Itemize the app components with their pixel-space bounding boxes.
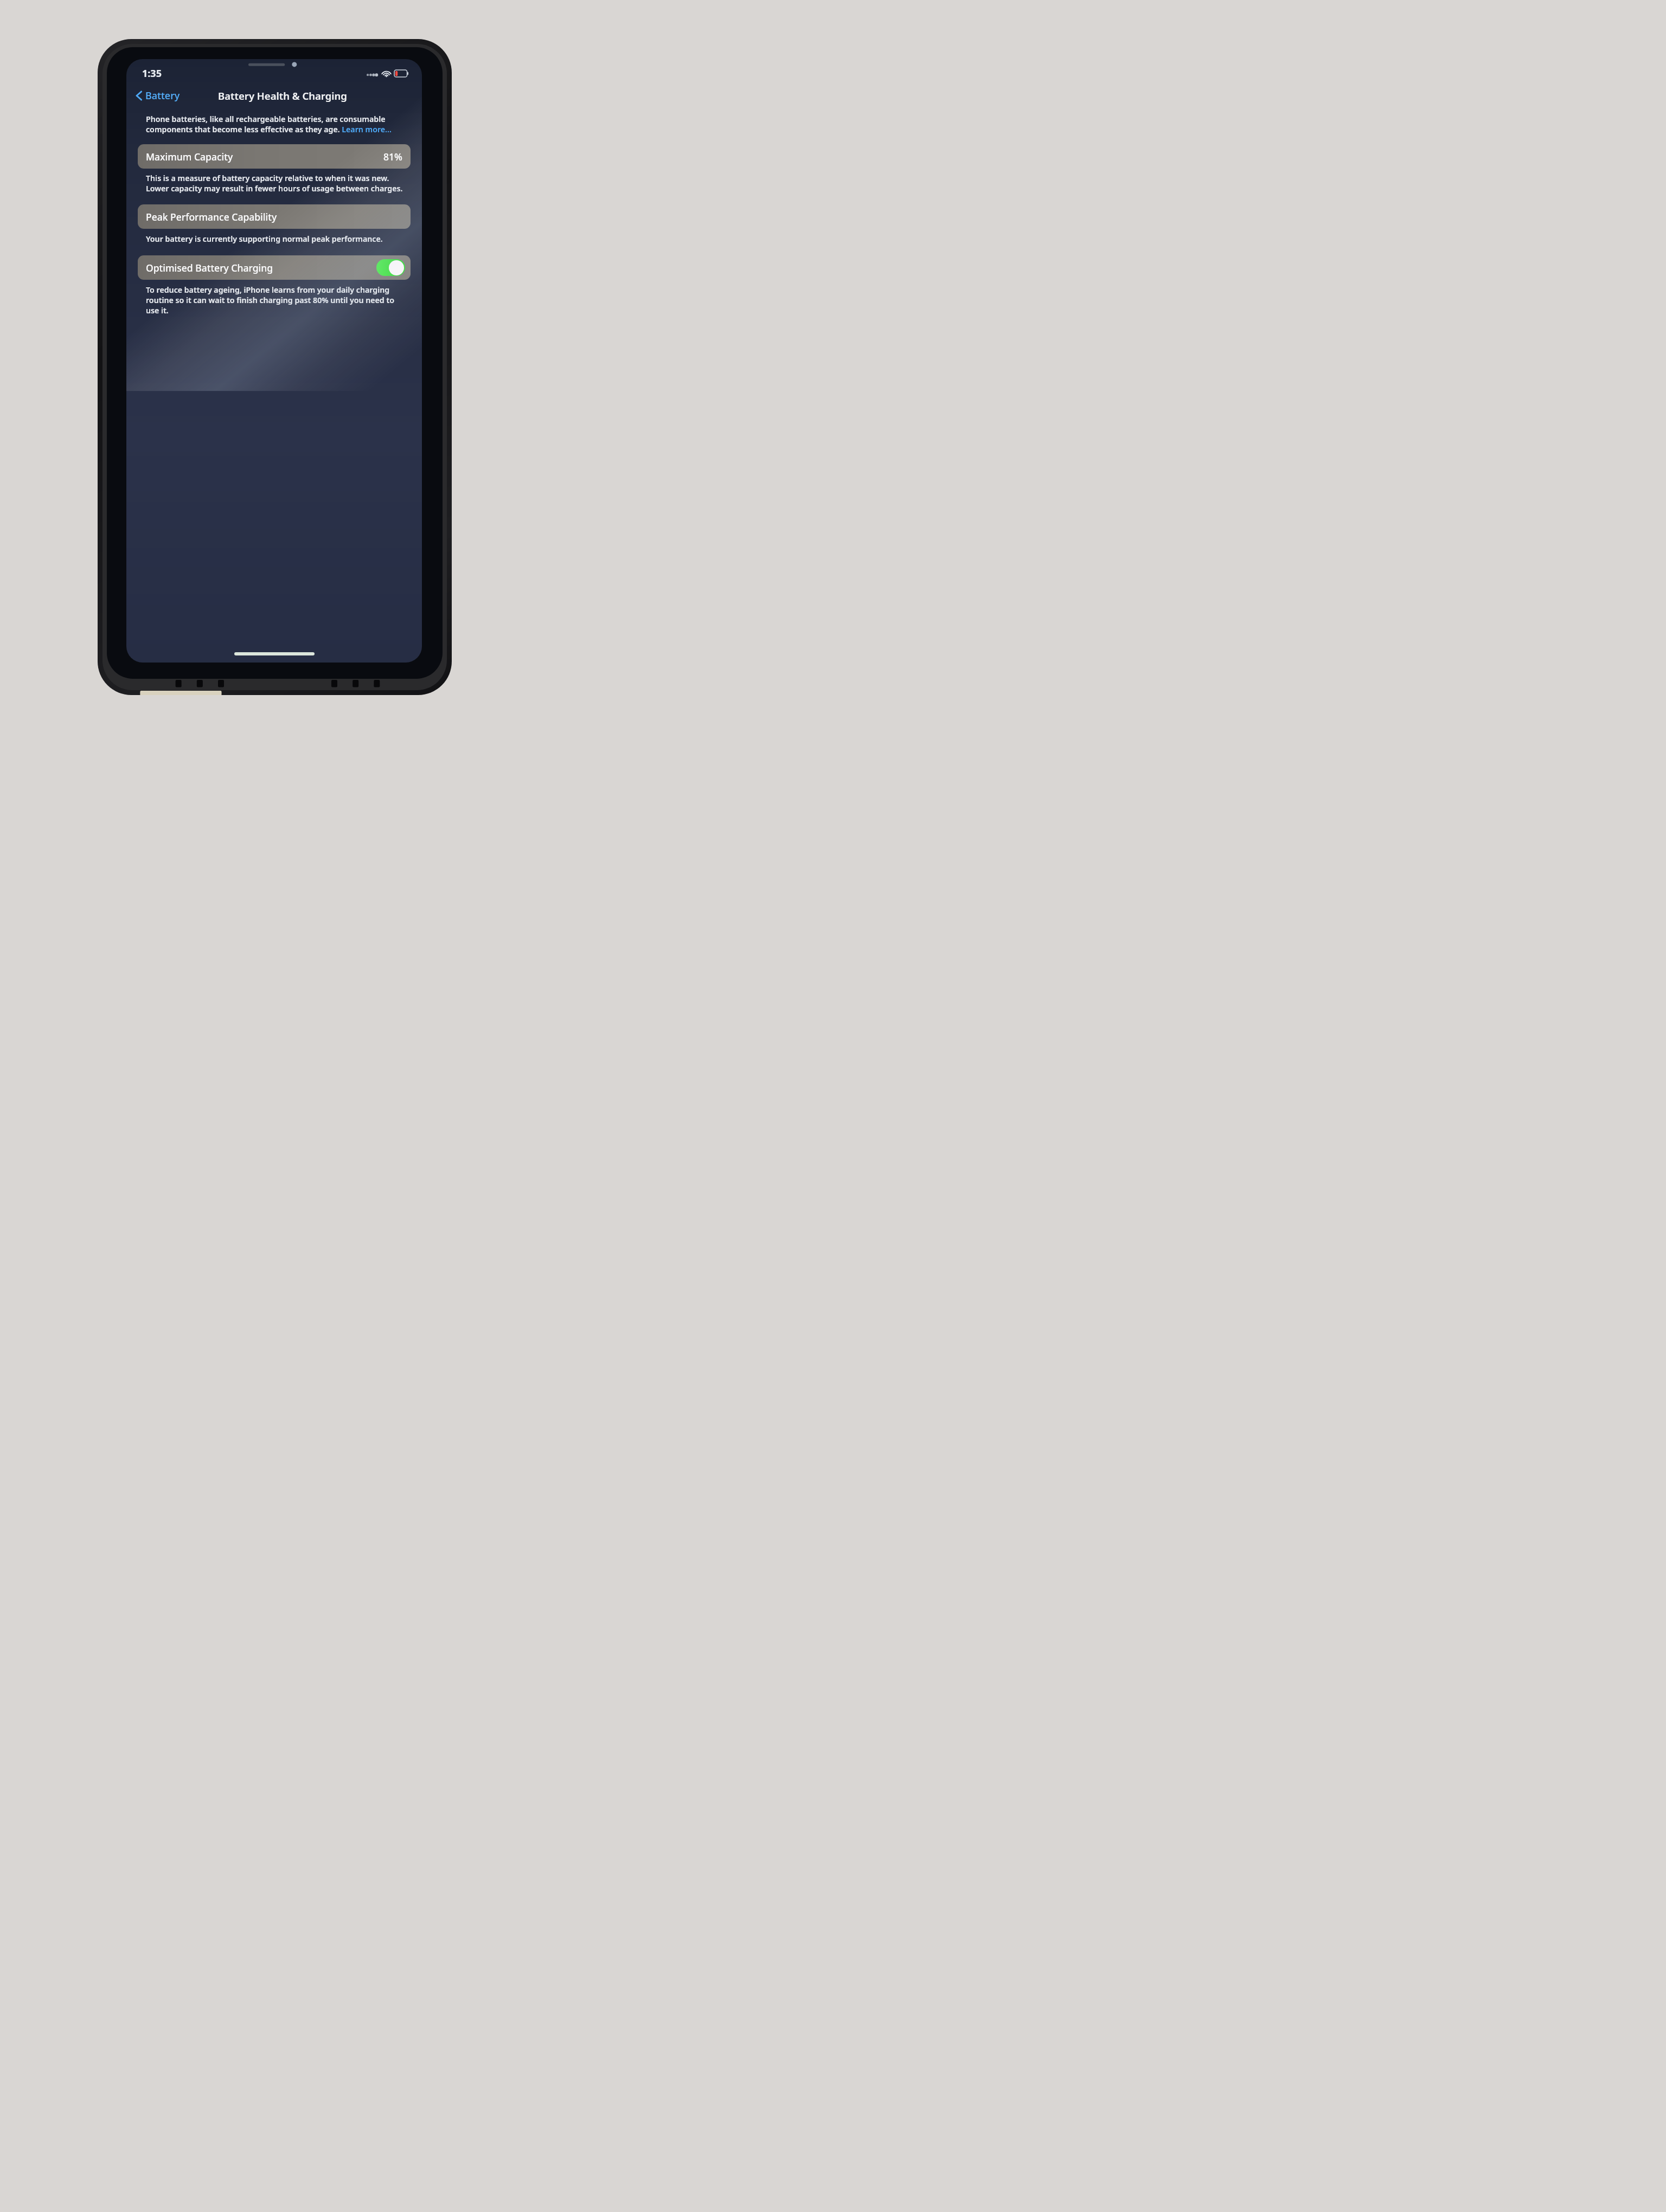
staticText: Peak Performance Capability (146, 210, 277, 223)
staticText: To reduce battery ageing, iPhone learns … (146, 285, 403, 316)
button[interactable]: Optimised Battery Charging (138, 255, 411, 280)
button[interactable]: Peak Performance Capability (138, 204, 411, 229)
staticText: Battery Health & Charging (218, 89, 347, 102)
button[interactable]: Maximum Capacity (138, 144, 411, 169)
staticText: Phone batteries, like all rechargeable b… (146, 114, 403, 134)
staticText: Optimised Battery Charging (146, 261, 273, 274)
staticText: Maximum Capacity (146, 150, 233, 163)
staticText: Your battery is currently supporting nor… (146, 234, 383, 244)
staticText: 1:35 (142, 67, 162, 80)
button[interactable]: Battery (126, 87, 184, 105)
staticText: 81% (383, 150, 402, 163)
staticText: This is a measure of battery capacity re… (146, 173, 403, 194)
button[interactable]: Optimised Battery Charging toggle, on (376, 259, 405, 276)
staticText: Battery (145, 89, 180, 102)
